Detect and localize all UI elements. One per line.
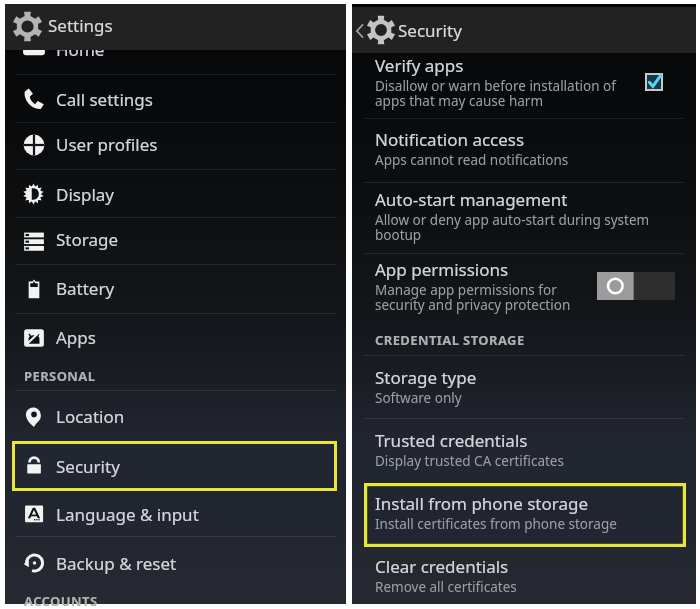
button[interactable]: Verify apps checkbox <box>645 73 663 91</box>
staticText: ACCOUNTS <box>24 592 98 609</box>
button[interactable]: App permissions <box>352 253 696 325</box>
staticText: Security <box>56 455 120 478</box>
staticText: Backup & reset <box>56 552 177 575</box>
button[interactable]: Backup & reset <box>5 539 346 587</box>
staticText: Notification access <box>375 128 525 151</box>
button[interactable]: Call settings <box>5 75 346 123</box>
other: Back <box>353 24 367 38</box>
staticText: Clear credentials <box>375 555 509 578</box>
button[interactable]: Notification access <box>352 118 696 182</box>
staticText: Software only <box>375 389 462 407</box>
button[interactable]: Auto-start management <box>352 182 696 253</box>
staticText: Storage type <box>375 366 477 389</box>
button[interactable]: Security <box>12 441 337 491</box>
button[interactable]: Storage type <box>352 355 696 419</box>
staticText: Storage <box>56 228 119 251</box>
staticText: App permissions <box>375 258 509 281</box>
staticText: Install from phone storage <box>375 492 588 515</box>
button[interactable]: Display <box>5 170 346 218</box>
staticText: Apps <box>56 326 96 349</box>
staticText: Allow or deny app auto-start during syst… <box>375 211 650 244</box>
staticText: Auto-start management <box>375 188 568 211</box>
staticText: Disallow or warn before installation of … <box>375 77 616 110</box>
staticText: Apps cannot read notifications <box>375 151 569 169</box>
staticText: Verify apps <box>375 54 464 77</box>
button[interactable]: Clear credentials <box>352 546 696 609</box>
staticText: Security <box>398 19 462 42</box>
button[interactable]: User profiles <box>5 121 346 168</box>
staticText: Display <box>56 183 114 206</box>
staticText: PERSONAL <box>24 367 96 385</box>
staticText: Language & input <box>56 503 199 526</box>
staticText: Battery <box>56 277 115 300</box>
button[interactable]: Trusted credentials <box>352 418 696 482</box>
staticText: CREDENTIAL STORAGE <box>375 331 525 349</box>
staticText: Home <box>56 38 105 61</box>
button[interactable]: App permissions switch <box>597 272 675 300</box>
button[interactable]: Settings <box>5 4 346 50</box>
staticText: Manage app permissions for security and … <box>375 281 571 314</box>
staticText: Display trusted CA certificates <box>375 452 564 470</box>
staticText: User profiles <box>56 133 158 156</box>
button[interactable]: Back <box>352 7 696 53</box>
staticText: Remove all certificates <box>375 578 517 596</box>
button[interactable]: Apps <box>5 314 346 361</box>
button[interactable]: Language & input <box>5 491 346 537</box>
staticText: Call settings <box>56 88 153 111</box>
staticText: Settings <box>48 14 113 37</box>
button[interactable]: Location <box>5 391 346 442</box>
staticText: Install certificates from phone storage <box>375 515 617 533</box>
button[interactable]: Storage <box>5 216 346 263</box>
staticText: Trusted credentials <box>375 429 528 452</box>
button[interactable]: Battery <box>5 264 346 313</box>
button[interactable]: Home <box>5 26 346 73</box>
staticText: Location <box>56 405 125 428</box>
button[interactable]: Verify apps <box>352 53 696 118</box>
button[interactable]: Install from phone storage <box>364 483 686 547</box>
